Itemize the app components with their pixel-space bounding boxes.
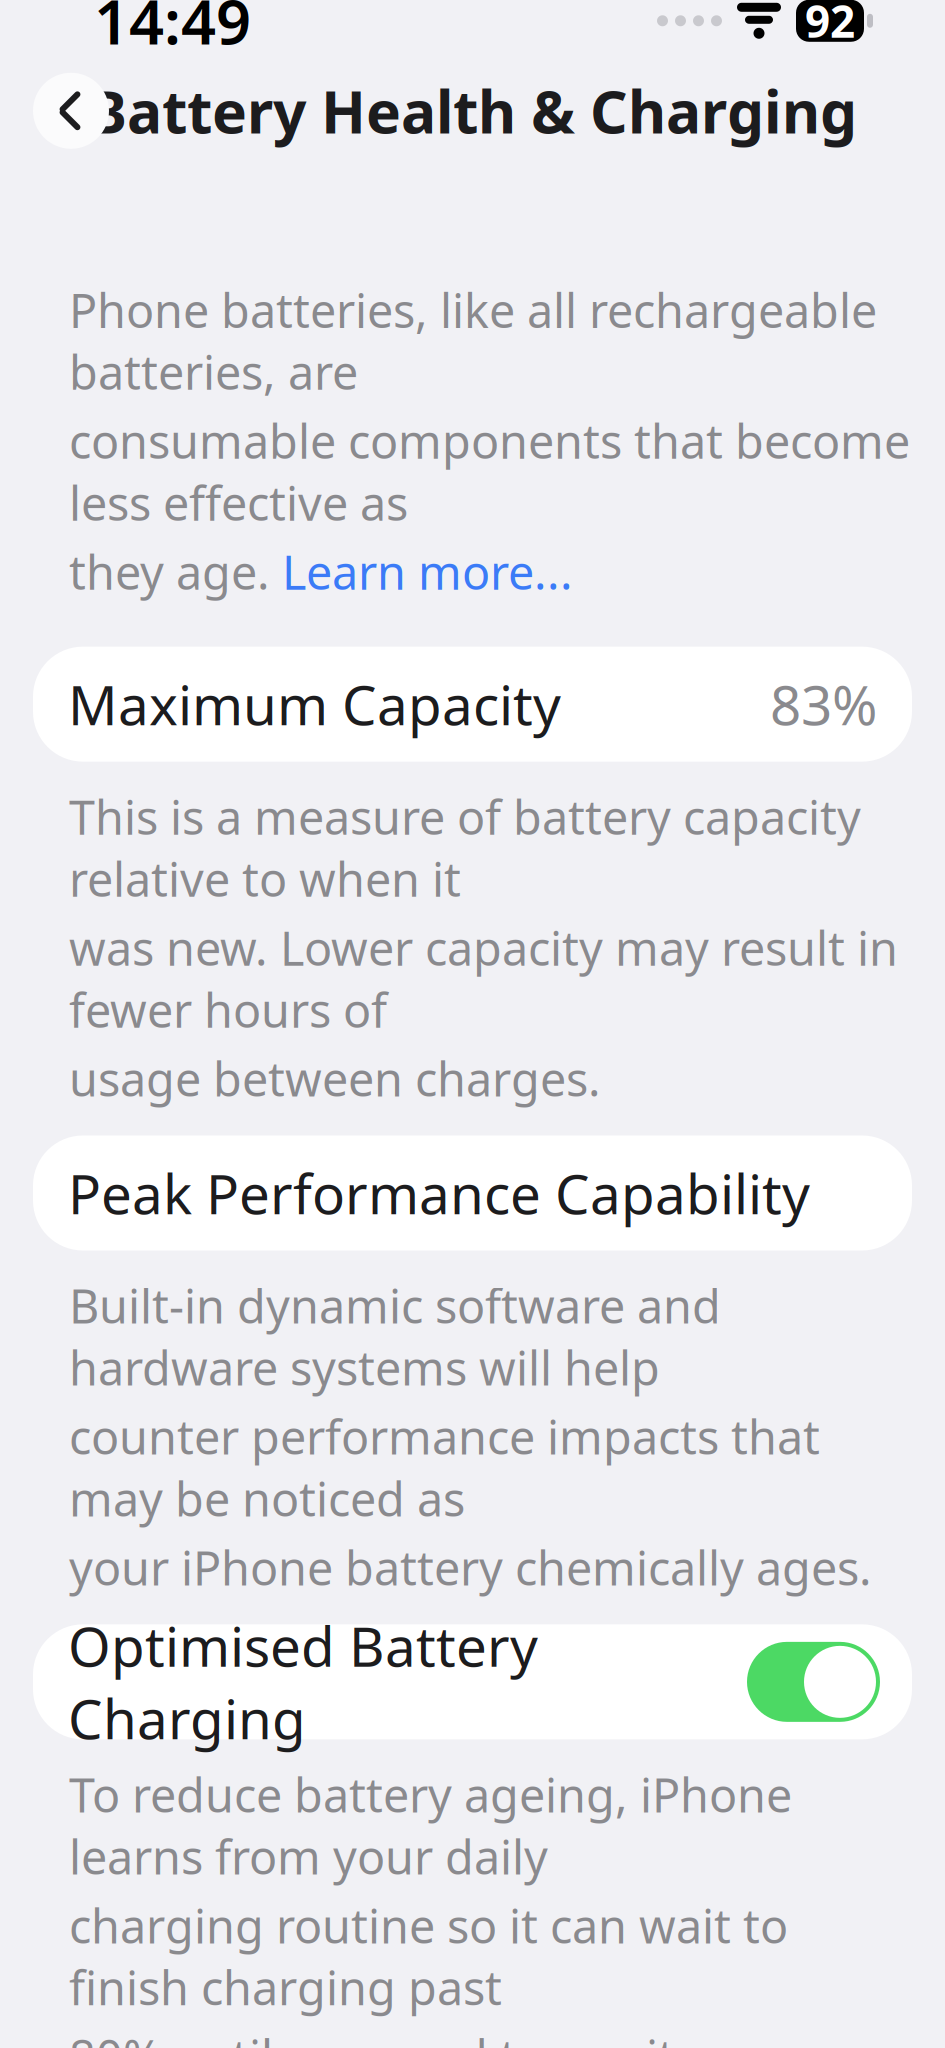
- staticText: 92: [805, 0, 855, 50]
- button[interactable]: Maximum Capacity: [33, 647, 912, 762]
- staticText: counter performance impacts that may be …: [69, 1405, 820, 1529]
- staticText: 14:49: [94, 0, 251, 62]
- staticText: To reduce battery ageing, iPhone learns …: [69, 1763, 792, 1887]
- staticText: Optimised Battery Charging: [68, 1609, 538, 1754]
- button[interactable]: Back: [33, 73, 109, 149]
- button[interactable]: Learn more...: [282, 541, 573, 603]
- staticText: Built-in dynamic software and hardware s…: [69, 1274, 721, 1398]
- staticText: 83%: [770, 668, 877, 740]
- staticText: your iPhone battery chemically ages.: [69, 1536, 872, 1598]
- button[interactable]: Optimised Battery Charging: [33, 1624, 912, 1739]
- staticText: was new. Lower capacity may result in fe…: [69, 917, 898, 1040]
- staticText: Maximum Capacity: [68, 668, 561, 740]
- staticText: charging routine so it can wait to finis…: [69, 1894, 788, 2018]
- staticText: consumable components that become less e…: [69, 410, 910, 534]
- button[interactable]: Peak Performance Capability: [33, 1135, 912, 1250]
- staticText: Battery Health & Charging: [88, 72, 857, 150]
- staticText: they age.: [69, 541, 282, 603]
- staticText: 80% until you need to use it.: [69, 2025, 688, 2048]
- staticText: This is a measure of battery capacity re…: [69, 786, 861, 909]
- staticText: Learn more...: [282, 541, 573, 603]
- staticText: usage between charges.: [69, 1047, 601, 1109]
- staticText: Phone batteries, like all rechargeable b…: [69, 279, 877, 403]
- staticText: Peak Performance Capability: [68, 1157, 810, 1229]
